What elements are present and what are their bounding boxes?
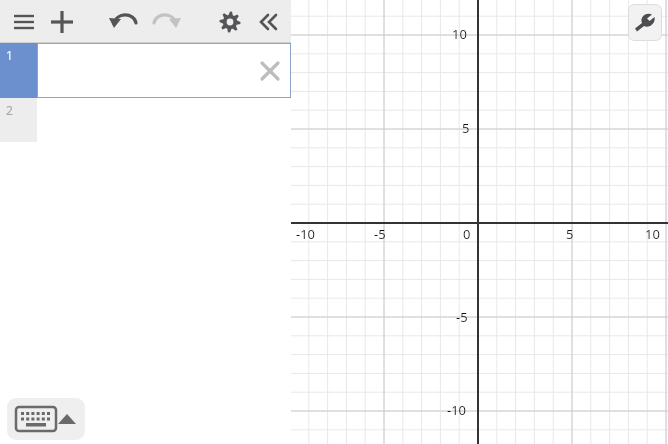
button[interactable]: Undo <box>106 5 144 39</box>
button[interactable]: Settings <box>212 5 248 39</box>
button[interactable]: Redo <box>146 5 184 39</box>
staticText: 2 <box>6 102 13 118</box>
button[interactable]: Toggle keyboard <box>7 398 85 440</box>
button[interactable]: 1 <box>0 43 291 98</box>
button[interactable]: Add expression <box>44 5 80 39</box>
staticText: 1 <box>6 47 13 63</box>
staticText: -5 <box>374 225 386 243</box>
staticText: 10 <box>452 25 467 43</box>
staticText: -5 <box>456 308 468 326</box>
staticText: -10 <box>296 225 316 243</box>
button[interactable]: Menu <box>6 5 42 39</box>
button[interactable]: Collapse panel <box>250 5 286 39</box>
staticText: 5 <box>566 225 574 243</box>
staticText: -10 <box>447 401 467 419</box>
staticText: 5 <box>462 119 470 137</box>
button[interactable]: 2 <box>0 98 291 142</box>
staticText: 0 <box>463 225 471 243</box>
staticText: 10 <box>645 225 660 243</box>
button[interactable]: Delete expression <box>257 58 283 84</box>
button[interactable]: Graph settings <box>628 4 662 41</box>
